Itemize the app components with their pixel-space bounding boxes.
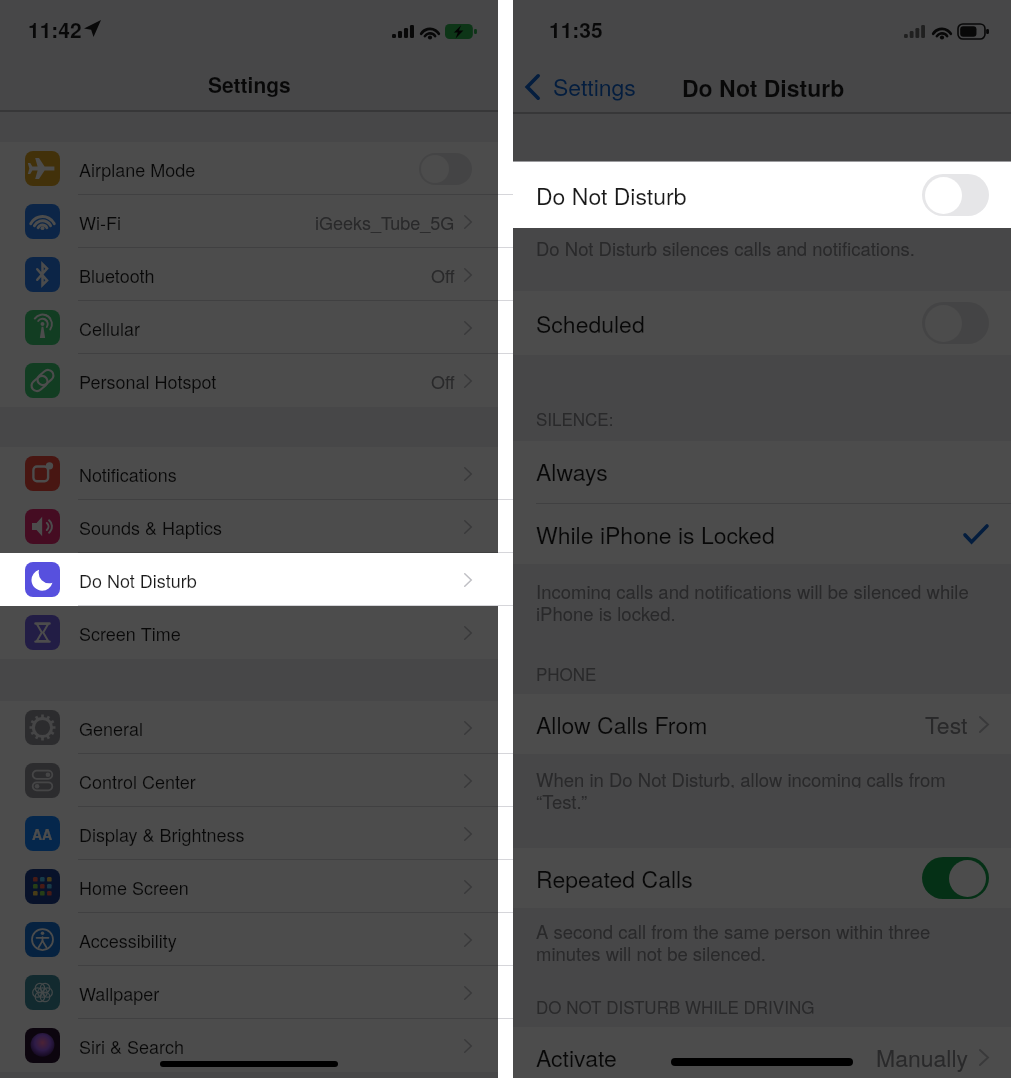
staticText: Bluetooth xyxy=(79,262,155,288)
button[interactable]: Always xyxy=(513,441,1011,501)
button[interactable]: Do Not Disturb xyxy=(513,162,1011,228)
staticText: Off xyxy=(431,368,455,394)
staticText: Manually xyxy=(876,1041,968,1074)
staticText: Do Not Disturb silences calls and notifi… xyxy=(536,235,915,261)
staticText: 11:42 xyxy=(28,14,82,44)
button[interactable]: Home Screen xyxy=(0,860,498,913)
staticText: Wallpaper xyxy=(79,980,160,1006)
staticText: Incoming calls and notifications will be… xyxy=(536,578,969,600)
button[interactable]: Switch off xyxy=(419,153,472,185)
staticText: Accessibility xyxy=(79,927,177,953)
staticText: minutes will not be silenced. xyxy=(536,940,766,962)
staticText: Test xyxy=(925,708,968,741)
staticText: While iPhone is Locked xyxy=(536,518,775,551)
button[interactable]: Do Not Disturb xyxy=(0,553,498,606)
staticText: Home Screen xyxy=(79,874,189,900)
button[interactable]: Switch off xyxy=(922,302,989,344)
staticText: 11:35 xyxy=(549,14,603,44)
button[interactable]: Scheduled xyxy=(513,291,1011,355)
staticText: Scheduled xyxy=(536,307,645,340)
button[interactable]: Settings xyxy=(525,69,636,102)
staticText: Wi-Fi xyxy=(79,209,121,235)
staticText: A second call from the same person withi… xyxy=(536,918,931,940)
staticText: Activate xyxy=(536,1041,617,1074)
button[interactable]: Accessibility xyxy=(0,913,498,966)
button[interactable]: Wallpaper xyxy=(0,966,498,1019)
button[interactable]: Wi-Fi xyxy=(0,195,498,248)
button[interactable]: While iPhone is Locked xyxy=(513,504,1011,564)
button[interactable]: Allow Calls From xyxy=(513,694,1011,754)
staticText: Screen Time xyxy=(79,620,181,646)
staticText: Off xyxy=(431,262,455,288)
other: Selected xyxy=(963,524,989,545)
staticText: Do Not Disturb xyxy=(536,179,687,212)
button[interactable]: Notifications xyxy=(0,447,498,500)
button[interactable]: Activate xyxy=(513,1027,1011,1078)
staticText: Cellular xyxy=(79,315,141,341)
staticText: Notifications xyxy=(79,461,177,487)
staticText: Display & Brightness xyxy=(79,821,245,847)
staticText: Do Not Disturb xyxy=(79,567,197,593)
staticText: Siri & Search xyxy=(79,1033,184,1059)
button[interactable]: Control Center xyxy=(0,754,498,807)
staticText: iGeeks_Tube_5G xyxy=(315,209,455,235)
staticText: Control Center xyxy=(79,768,196,794)
staticText: Allow Calls From xyxy=(536,708,708,741)
button[interactable]: Switch off xyxy=(922,174,989,216)
button[interactable]: Cellular xyxy=(0,301,498,354)
staticText: PHONE xyxy=(536,661,597,685)
staticText: Sounds & Haptics xyxy=(79,514,222,540)
staticText: Always xyxy=(536,455,608,488)
button[interactable]: Screen Time xyxy=(0,606,498,659)
button[interactable]: Personal Hotspot xyxy=(0,354,498,407)
staticText: DO NOT DISTURB WHILE DRIVING xyxy=(536,994,815,1018)
staticText: SILENCE: xyxy=(536,406,614,430)
staticText: When in Do Not Disturb, allow incoming c… xyxy=(536,766,946,788)
staticText: “Test.” xyxy=(536,788,588,810)
staticText: AA xyxy=(32,824,53,844)
other: Location active xyxy=(84,20,101,37)
staticText: Personal Hotspot xyxy=(79,368,217,394)
staticText: Settings xyxy=(553,70,636,103)
staticText: Do Not Disturb xyxy=(682,71,845,104)
button[interactable]: Switch on xyxy=(922,857,989,899)
button[interactable]: Airplane Mode xyxy=(0,142,498,195)
staticText: Repeated Calls xyxy=(536,862,693,895)
button[interactable]: Bluetooth xyxy=(0,248,498,301)
staticText: Airplane Mode xyxy=(79,156,196,182)
button[interactable]: Sounds & Haptics xyxy=(0,500,498,553)
staticText: General xyxy=(79,715,143,741)
button[interactable]: Repeated Calls xyxy=(513,848,1011,908)
staticText: iPhone is locked. xyxy=(536,600,676,622)
staticText: Settings xyxy=(208,69,291,99)
button[interactable]: General xyxy=(0,701,498,754)
button[interactable]: Siri & Search xyxy=(0,1019,498,1072)
button[interactable]: AA xyxy=(0,807,498,860)
